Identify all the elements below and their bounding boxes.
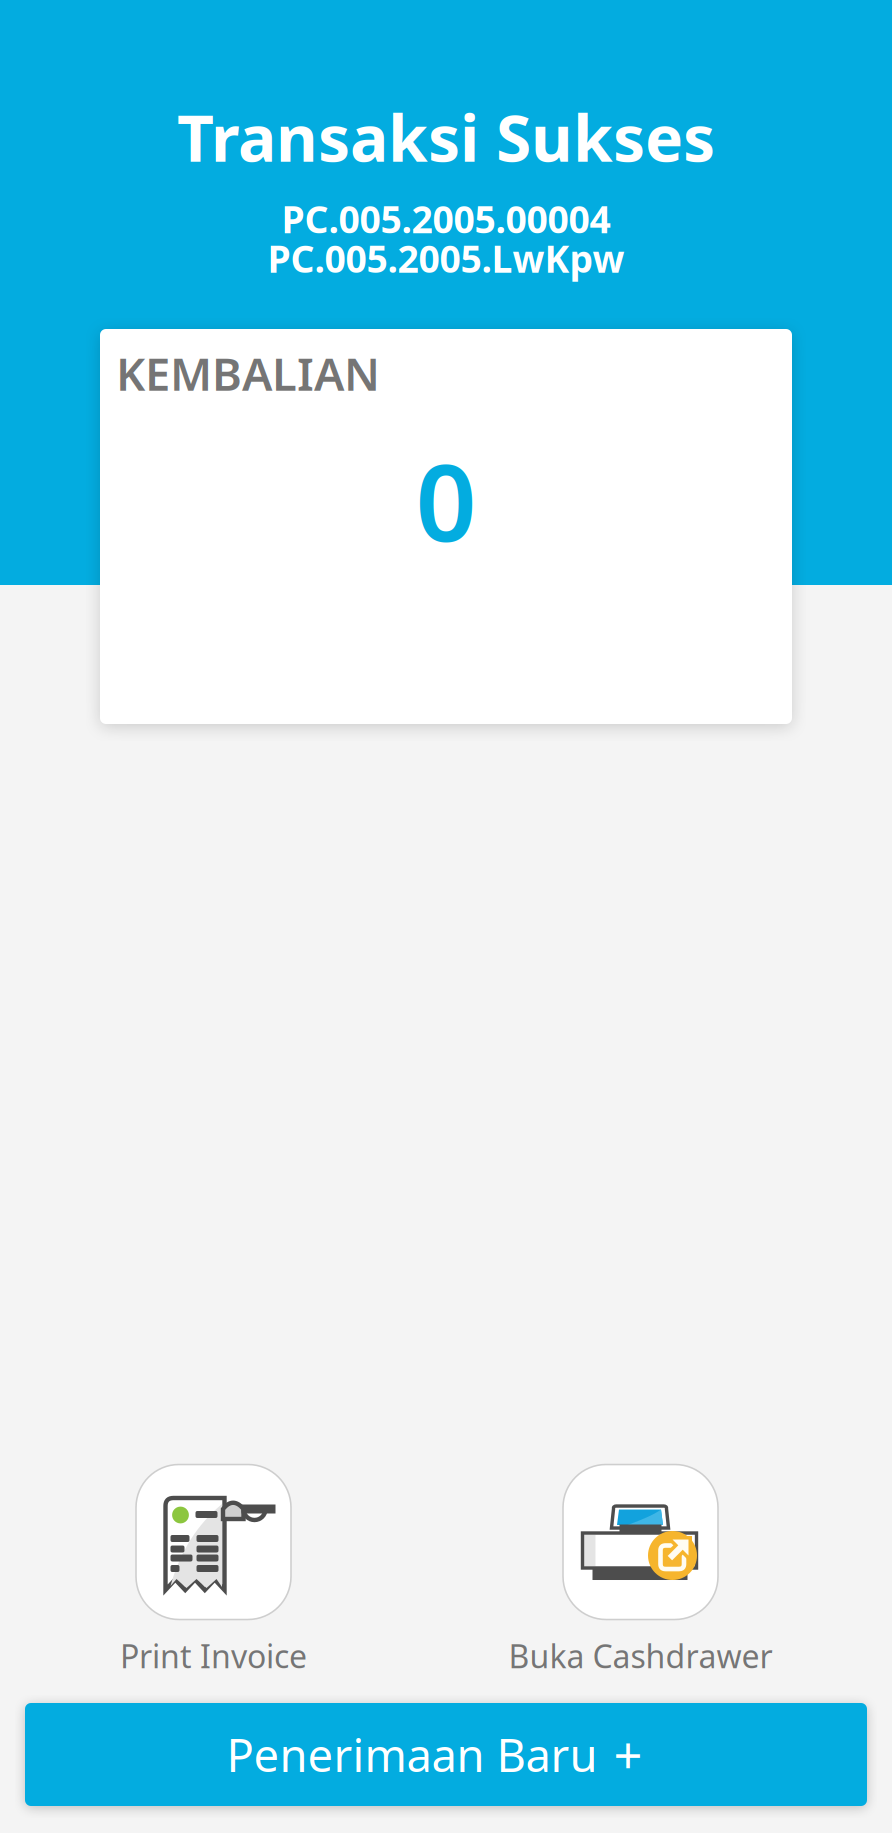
staticText: Buka Cashdrawer [508,1634,772,1677]
staticText: 0 [415,429,476,571]
staticText: PC.005.2005.00004 [281,194,610,244]
staticText: PC.005.2005.LwKpw [267,233,624,283]
button[interactable]: Buka Cashdrawer [427,1464,854,1677]
staticText: Penerimaan Baru [226,1724,597,1785]
staticText: KEMBALIAN [116,343,380,403]
button[interactable]: Print Invoice [0,1464,427,1677]
staticText: Transaksi Sukses [177,94,715,179]
button[interactable]: Penerimaan Baru [25,1703,867,1806]
staticText: Print Invoice [120,1634,307,1677]
staticText: + [613,1721,642,1788]
